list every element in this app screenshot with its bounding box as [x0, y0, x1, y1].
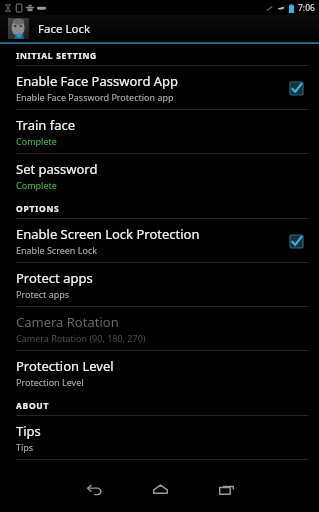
button[interactable]: Back	[68, 466, 120, 512]
staticText: Enable Face Password Protection app	[16, 91, 174, 103]
button[interactable]: Recent apps	[200, 466, 252, 512]
staticText: Train face	[16, 116, 76, 134]
staticText: Camera Rotation (90, 180, 270)	[16, 332, 146, 344]
button[interactable]: Camera Rotation	[0, 307, 319, 350]
staticText: Protect apps	[16, 269, 93, 287]
staticText: Complete	[16, 179, 57, 191]
staticText: Camera Rotation	[16, 313, 119, 331]
button[interactable]: Set password	[0, 154, 319, 197]
staticText: Complete	[16, 135, 57, 147]
staticText: Protection Level	[16, 357, 114, 375]
staticText: Tips	[16, 422, 41, 440]
button[interactable]: Enable Screen Lock Protection	[0, 219, 319, 262]
button[interactable]: Train face	[0, 110, 319, 153]
staticText: Protect apps	[16, 288, 70, 300]
staticText: Enable Screen Lock Protection	[16, 225, 200, 243]
button[interactable]: Protection Level	[0, 351, 319, 394]
button[interactable]: Protect apps	[0, 263, 319, 306]
staticText: ABOUT	[16, 400, 50, 412]
staticText: INITIAL SETTING	[16, 50, 97, 62]
staticText: OPTIONS	[16, 203, 60, 215]
staticText: 7:06	[298, 2, 315, 14]
staticText: Tips	[16, 441, 34, 453]
button[interactable]: Tips	[0, 416, 319, 459]
staticText: Face Lock	[38, 21, 91, 37]
button[interactable]: Enable Face Password App	[0, 66, 319, 109]
staticText: Enable Screen Lock	[16, 244, 98, 256]
staticText: Enable Face Password App	[16, 72, 179, 90]
staticText: Protection Level	[16, 376, 84, 388]
button[interactable]: Home	[134, 466, 186, 512]
staticText: Set password	[16, 160, 98, 178]
